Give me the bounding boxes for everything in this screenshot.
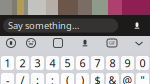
button[interactable]: 2 (16, 56, 29, 70)
button[interactable]: Say something… (3, 18, 118, 32)
button[interactable]: Voice message (128, 16, 146, 34)
button[interactable]: Stickers (48, 36, 68, 50)
button[interactable]: 9 (121, 56, 134, 70)
staticText: : (36, 73, 39, 84)
button[interactable]: 7 (91, 56, 104, 70)
button[interactable]: Camera (1, 36, 21, 50)
button[interactable]: - (1, 73, 14, 84)
button[interactable]: 0 (136, 56, 149, 70)
button[interactable]: Hide keyboard (129, 36, 149, 50)
button[interactable]: / (16, 73, 29, 84)
staticText: - (6, 73, 9, 84)
staticText: 1 (4, 56, 10, 70)
staticText: Say something… (8, 19, 79, 32)
button[interactable]: 3 (31, 56, 44, 70)
staticText: & (108, 73, 116, 84)
staticText: ) (81, 73, 84, 84)
button[interactable]: @ (121, 73, 134, 84)
staticText: " (140, 73, 144, 84)
button[interactable]: $ (91, 73, 104, 84)
staticText: 8 (109, 56, 115, 70)
staticText: @ (122, 73, 132, 84)
button[interactable]: : (31, 73, 44, 84)
button[interactable]: 6 (76, 56, 89, 70)
button[interactable]: " (136, 73, 149, 84)
staticText: 3 (34, 56, 40, 70)
button[interactable]: Emoji (21, 36, 41, 50)
staticText: 4 (49, 56, 55, 70)
staticText: 9 (124, 56, 130, 70)
button[interactable]: 4 (46, 56, 59, 70)
button[interactable]: & (106, 73, 119, 84)
staticText: 6 (79, 56, 85, 70)
staticText: ; (51, 73, 54, 84)
button[interactable]: ( (61, 73, 74, 84)
staticText: 5 (64, 56, 70, 70)
button[interactable]: ) (76, 73, 89, 84)
button[interactable]: 5 (61, 56, 74, 70)
staticText: ( (66, 73, 69, 84)
staticText: / (20, 73, 24, 84)
staticText: 7 (94, 56, 100, 70)
button[interactable]: 1 (1, 56, 14, 70)
button[interactable]: GIF (102, 36, 122, 50)
button[interactable]: Dictation (75, 36, 95, 50)
staticText: $ (94, 73, 100, 84)
button[interactable]: ; (46, 73, 59, 84)
staticText: 0 (139, 56, 145, 70)
staticText: 2 (19, 56, 25, 70)
button[interactable]: 8 (106, 56, 119, 70)
staticText: GIF (109, 40, 115, 46)
